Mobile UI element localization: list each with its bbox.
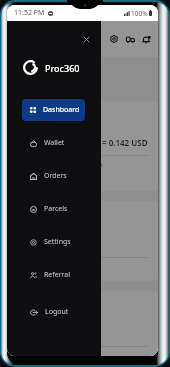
button[interactable]: Orders <box>22 165 85 187</box>
staticText: Referral <box>44 270 71 280</box>
staticText: Order #CN240118 <box>20 209 93 220</box>
button[interactable]: Notifications <box>138 31 154 47</box>
staticText: Wallet <box>44 138 65 148</box>
button[interactable]: Close menu <box>78 31 94 47</box>
button[interactable]: Wallet <box>22 132 85 154</box>
staticText: Dashboard <box>43 105 80 115</box>
staticText: Logout <box>45 307 69 317</box>
button[interactable]: Settings <box>106 31 122 47</box>
button[interactable]: Parcels <box>22 198 85 220</box>
button[interactable]: Logout <box>22 301 85 323</box>
staticText: Payment <box>20 108 56 119</box>
staticText: 11:52 PM <box>14 8 45 18</box>
button[interactable]: Settings <box>22 231 85 253</box>
staticText: Proc360 <box>45 62 80 74</box>
button[interactable]: Shipping <box>122 31 138 47</box>
button[interactable]: Dashboard <box>22 99 85 121</box>
staticText: Settings <box>44 237 71 247</box>
staticText: 1 CNY = 0.142 USD <box>77 137 148 148</box>
staticText: Shipping address <box>20 299 91 310</box>
staticText: Payment summary <box>13 65 92 77</box>
staticText: 100% <box>131 9 148 18</box>
staticText: Parcels <box>44 204 68 214</box>
staticText: 3 items · 2.4 kg Estimated 12 Feb <box>20 225 74 243</box>
staticText: Room 402, Tower B Shenzhen, CN 518000 <box>20 315 88 333</box>
staticText: Exchange rate is subject to change at de… <box>20 160 103 178</box>
staticText: Rate <box>20 138 35 148</box>
button[interactable]: Referral <box>22 264 85 286</box>
staticText: Orders <box>44 171 67 181</box>
